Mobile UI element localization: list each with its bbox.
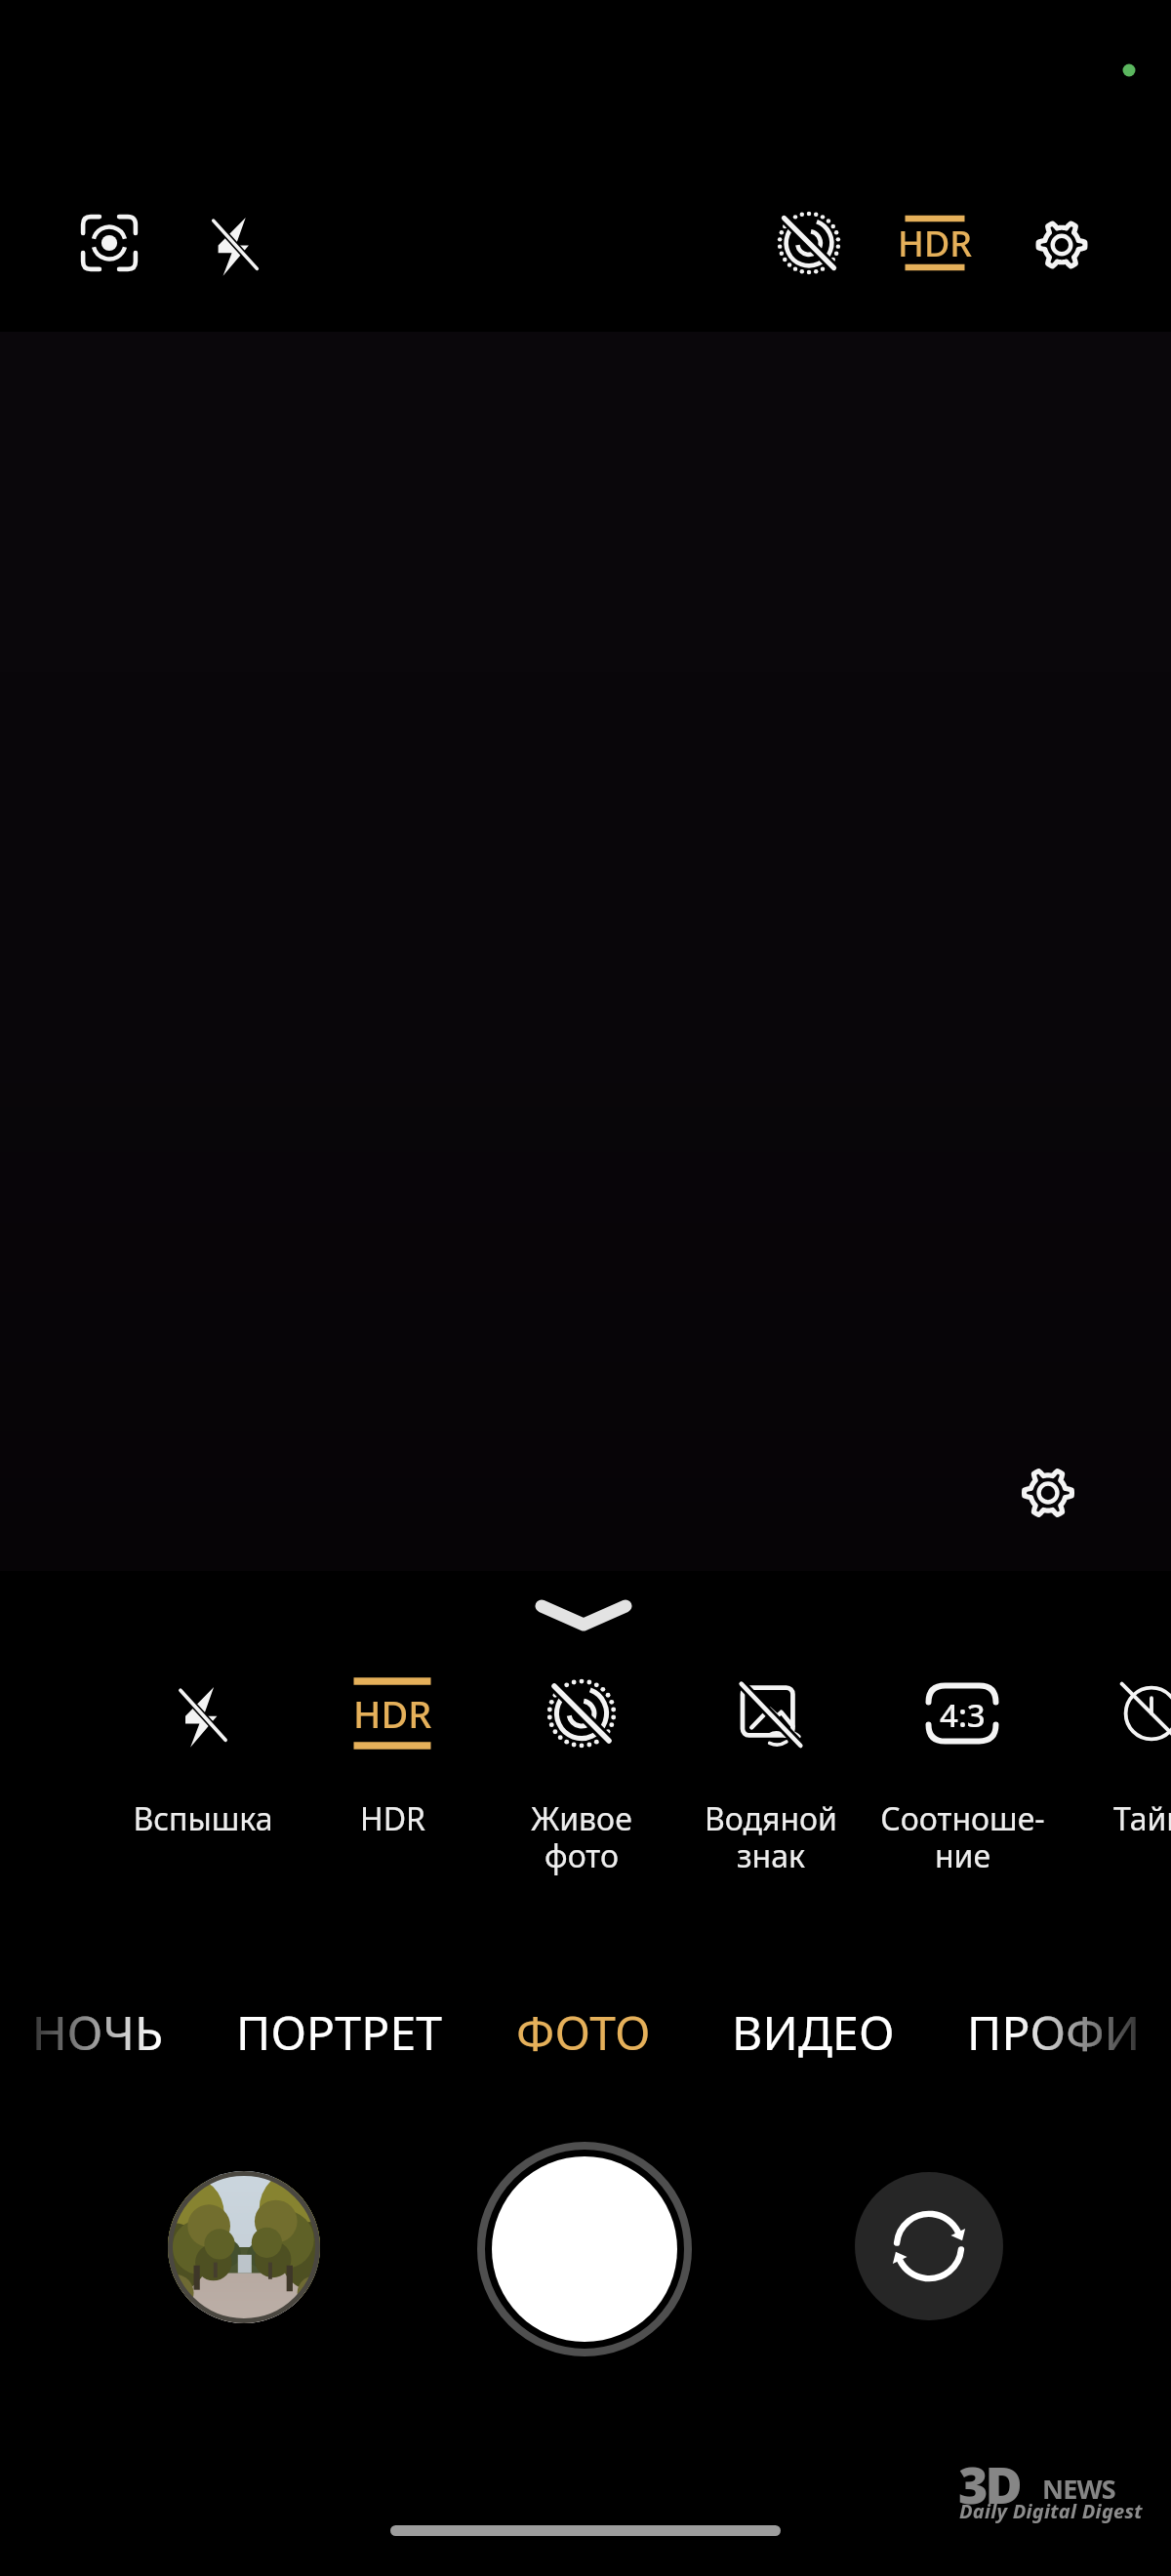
staticText: ФОТО (516, 2000, 651, 2064)
staticText: ВИДЕО (732, 2000, 895, 2064)
staticText: Живое фото (531, 1797, 632, 1876)
button[interactable]: ПОРТРЕТ (193, 1973, 486, 2090)
button[interactable]: 4:3 (868, 1667, 1056, 1760)
staticText: 3D (958, 2449, 1020, 2518)
staticText: HDR (353, 1688, 432, 1739)
staticText: Тайм (1113, 1797, 1171, 1840)
button[interactable]: HDR (886, 204, 984, 282)
staticText: NEWS (1042, 2471, 1115, 2507)
button[interactable] (488, 1667, 675, 1760)
staticText: ПРОФИ (967, 2000, 1141, 2064)
button[interactable]: Live photo off (770, 204, 848, 282)
staticText: HDR (360, 1797, 425, 1840)
button[interactable]: Camera settings (1015, 1460, 1081, 1526)
button[interactable]: Smart capture (76, 210, 142, 276)
button[interactable]: Collapse panel (520, 1579, 647, 1649)
staticText: Вспышка (133, 1797, 273, 1840)
button[interactable]: Gallery (168, 2171, 320, 2323)
staticText: ПОРТРЕТ (236, 2000, 443, 2064)
button[interactable]: Switch camera (855, 2172, 1003, 2320)
button[interactable] (109, 1667, 297, 1760)
staticText: HDR (898, 220, 972, 267)
button[interactable]: Shutter (475, 2140, 694, 2358)
button[interactable] (677, 1667, 865, 1760)
button[interactable]: ПРОФИ (908, 1973, 1171, 2090)
button[interactable]: ВИДЕО (666, 1973, 959, 2090)
button[interactable]: НОЧЬ (0, 1973, 244, 2090)
staticText: 4:3 (940, 1693, 986, 1737)
button[interactable]: Flash off (202, 210, 268, 276)
button[interactable]: Settings (1029, 212, 1095, 278)
staticText: Соотноше- ние (880, 1797, 1045, 1876)
button[interactable]: ФОТО (437, 1973, 730, 2090)
button[interactable]: HDR (299, 1667, 486, 1760)
staticText: Водяной знак (705, 1797, 837, 1876)
staticText: НОЧЬ (32, 2000, 164, 2064)
staticText: Daily Digital Digest (959, 2498, 1143, 2524)
button[interactable] (1058, 1667, 1171, 1760)
